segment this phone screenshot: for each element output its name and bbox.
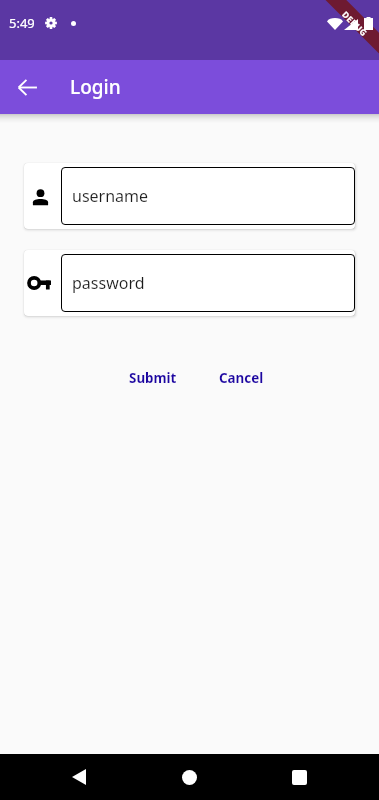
button[interactable]: Cancel [211, 365, 272, 391]
staticText: Login [70, 74, 121, 100]
staticText: 5:49 [9, 14, 35, 32]
button[interactable]: Back [56, 754, 102, 800]
button[interactable]: Submit [121, 365, 185, 391]
staticText: Submit [129, 369, 177, 387]
button[interactable]: Recents [276, 754, 322, 800]
button[interactable]: Back [0, 60, 54, 114]
staticText: Cancel [219, 369, 264, 387]
staticText: password [72, 272, 145, 294]
button[interactable]: Home [166, 754, 212, 800]
button[interactable]: password [61, 254, 355, 312]
button[interactable]: username [61, 167, 355, 225]
staticText: username [72, 185, 149, 207]
